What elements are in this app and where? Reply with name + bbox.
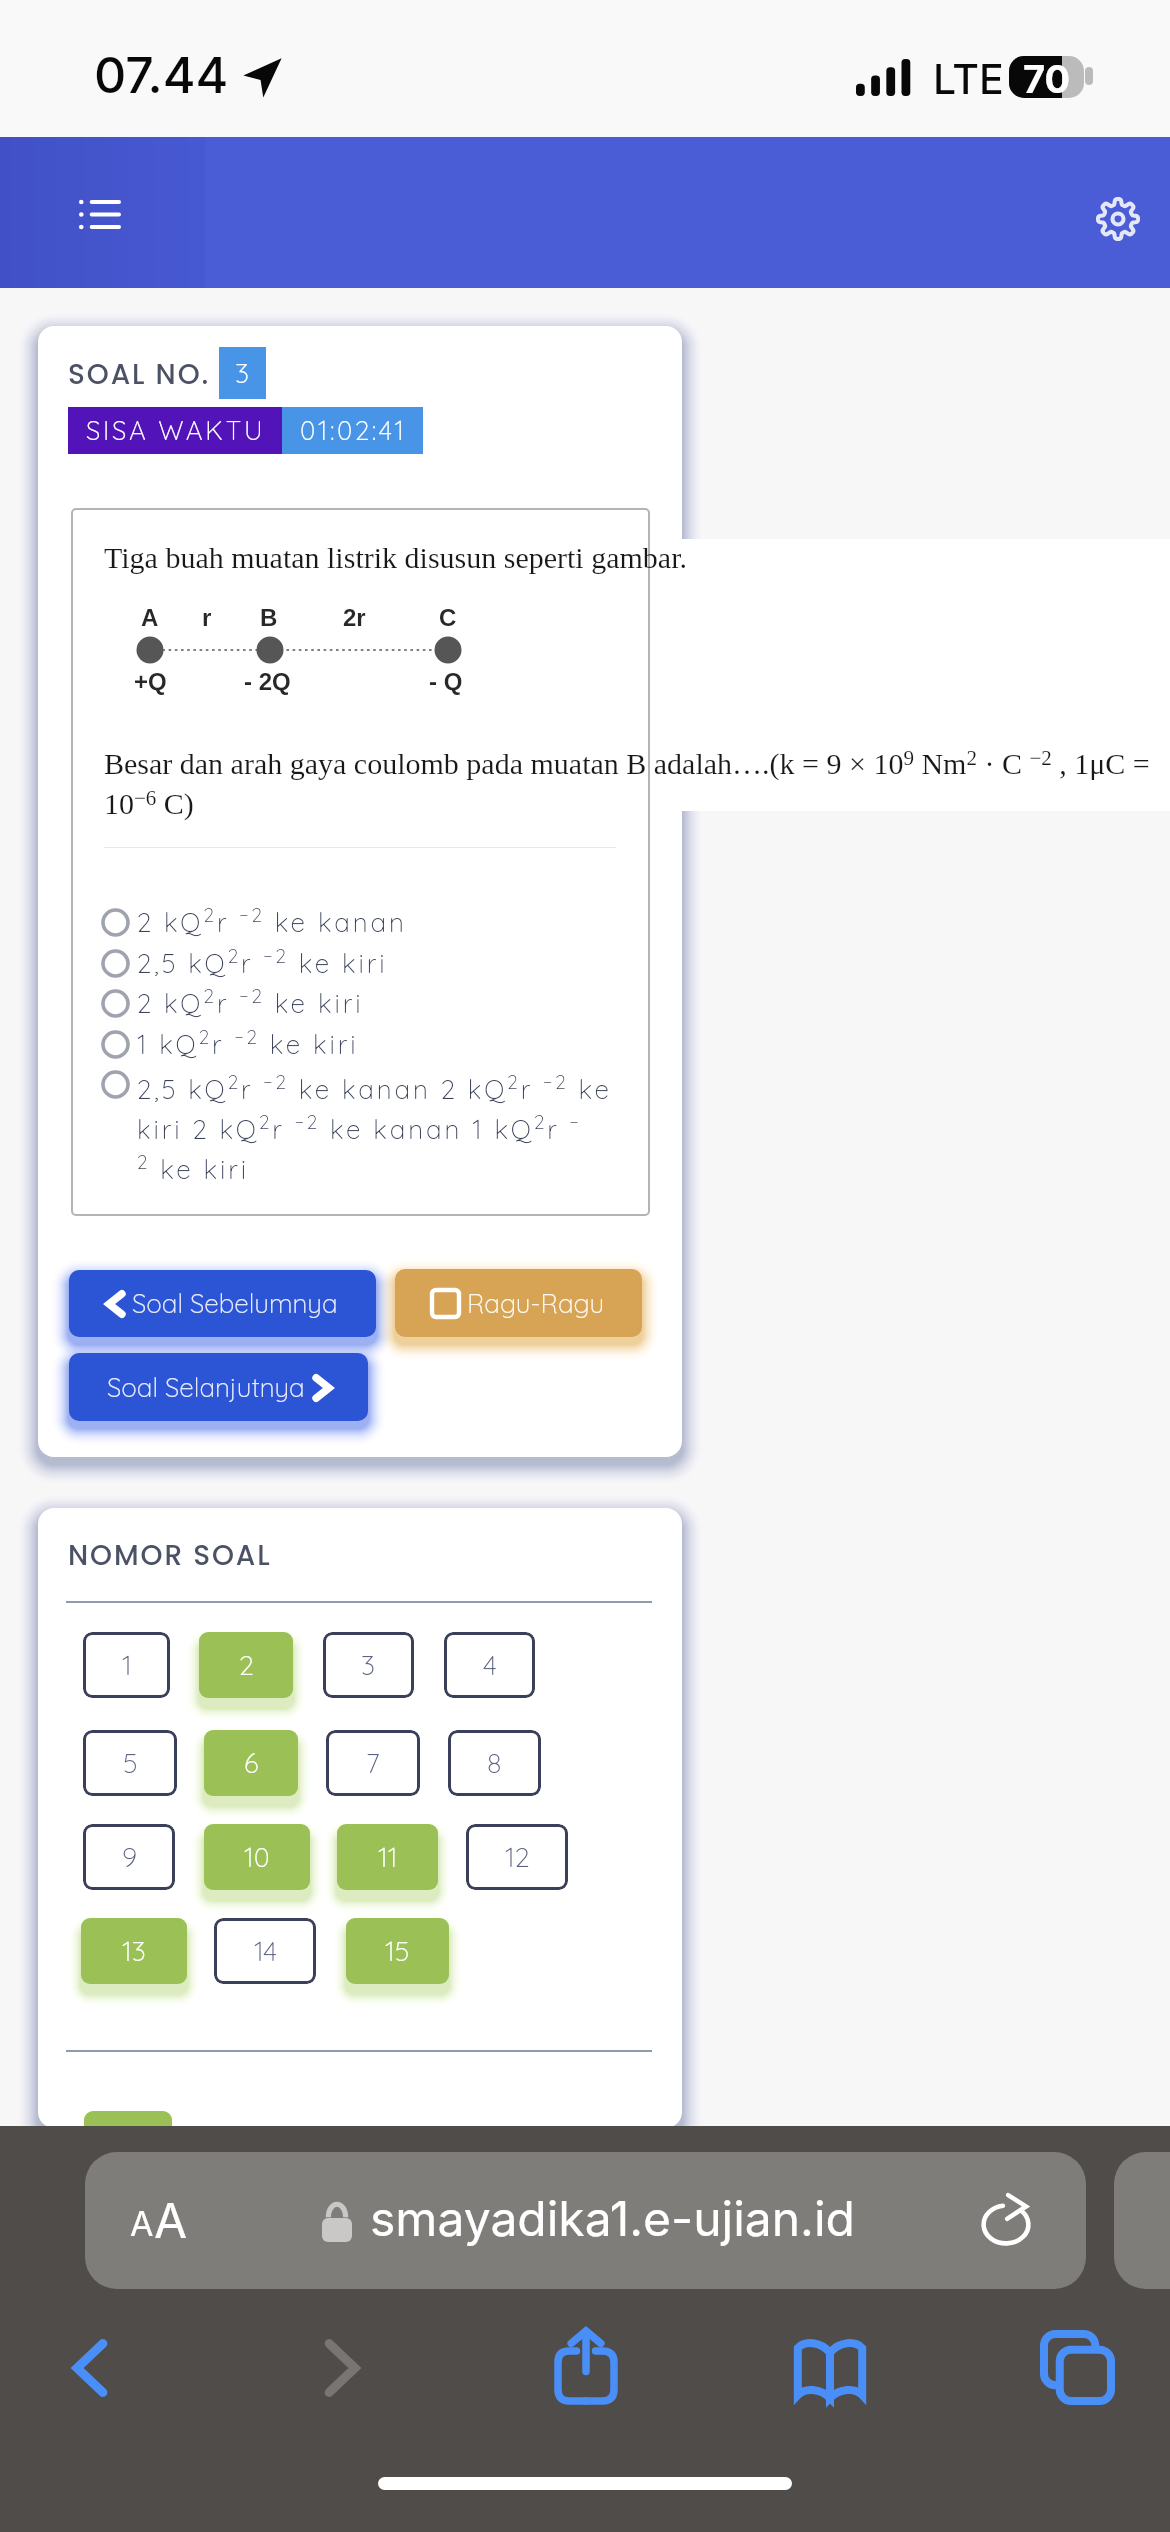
staticText: 07.44 — [94, 45, 229, 105]
button[interactable] — [84, 2111, 172, 2177]
staticText: +Q — [134, 668, 167, 695]
staticText: 11 — [378, 1840, 398, 1874]
staticText: kiri 2 kQ2r −2 ke kanan 1 kQ2r − — [137, 1110, 582, 1145]
staticText: 14 — [254, 1934, 277, 1968]
staticText: SOAL NO. — [68, 355, 211, 394]
staticText: 2,5 kQ2r −2 ke kiri — [137, 944, 388, 979]
button[interactable]: Forward — [300, 2326, 384, 2410]
button[interactable]: 5 — [83, 1730, 177, 1796]
staticText: 2,5 kQ2r −2 ke kanan 2 kQ2r −2 ke — [137, 1070, 612, 1105]
staticText: Ragu-Ragu — [467, 1287, 605, 1320]
staticText: 4 — [483, 1648, 497, 1682]
button[interactable]: 4 — [444, 1632, 535, 1698]
button[interactable]: 14 — [214, 1918, 316, 1984]
staticText: 2 ke kiri — [137, 1150, 249, 1185]
staticText: 9 — [122, 1840, 137, 1874]
button[interactable]: 12 — [466, 1824, 568, 1890]
button[interactable]: 2 — [199, 1632, 293, 1698]
staticText: 15 — [385, 1934, 410, 1968]
staticText: - Q — [429, 668, 463, 695]
button[interactable]: 2 kQ2r −2 ke kanan — [101, 902, 621, 943]
staticText: LTE — [933, 54, 1004, 104]
button[interactable]: Back — [48, 2326, 132, 2410]
staticText: A — [130, 2203, 154, 2244]
button[interactable]: Soal Selanjutnya — [69, 1353, 368, 1421]
button[interactable]: 2,5 kQ2r −2 ke kiri — [101, 943, 621, 984]
staticText: 3 — [361, 1648, 376, 1682]
staticText: 10−6 C) — [104, 786, 194, 821]
staticText: NOMOR SOAL — [68, 1536, 272, 1575]
staticText: smayadika1.e-ujian.id — [370, 2189, 855, 2247]
staticText: 1 — [122, 1648, 132, 1682]
button[interactable]: 3 — [323, 1632, 414, 1698]
button[interactable]: 7 — [326, 1730, 420, 1796]
button[interactable]: 8 — [448, 1730, 541, 1796]
button[interactable]: 9 — [83, 1824, 175, 1890]
button[interactable]: 1 kQ2r −2 ke kiri — [101, 1024, 621, 1065]
staticText: 2 kQ2r −2 ke kanan — [137, 903, 407, 938]
staticText: A — [141, 604, 159, 631]
button[interactable]: Share — [543, 2322, 629, 2408]
staticText: Tiga buah muatan listrik disusun seperti… — [104, 541, 687, 574]
button[interactable]: 6 — [204, 1730, 298, 1796]
button[interactable]: Soal Sebelumnya — [69, 1270, 376, 1337]
button[interactable]: Reload — [970, 2185, 1042, 2257]
button[interactable]: 15 — [346, 1918, 449, 1984]
staticText: SISA WAKTU — [86, 414, 266, 447]
staticText: Soal Selanjutnya — [107, 1371, 305, 1404]
staticText: 1 kQ2r −2 ke kiri — [137, 1025, 359, 1060]
button[interactable]: 2,5 kQ2r −2 ke kanan 2 kQ2r −2 ke — [101, 1064, 631, 1194]
button[interactable]: Settings — [1094, 195, 1142, 243]
button[interactable]: Bookmarks — [787, 2326, 873, 2412]
staticText: A — [154, 2191, 188, 2249]
button[interactable]: Menu — [52, 179, 148, 251]
staticText: 2 — [239, 1648, 254, 1682]
staticText: 2 kQ2r −2 ke kiri — [137, 984, 364, 1019]
button[interactable]: 11 — [337, 1824, 438, 1890]
staticText: 5 — [123, 1746, 138, 1780]
staticText: 13 — [122, 1934, 146, 1968]
staticText: 6 — [244, 1746, 259, 1780]
button[interactable]: 1 — [83, 1632, 170, 1698]
button[interactable]: Tabs — [1034, 2324, 1120, 2410]
button[interactable]: 10 — [204, 1824, 310, 1890]
staticText: 10 — [244, 1840, 270, 1874]
staticText: 12 — [505, 1840, 530, 1874]
button[interactable]: Ragu-Ragu — [395, 1269, 642, 1337]
staticText: Soal Sebelumnya — [132, 1287, 338, 1320]
button[interactable]: 2 kQ2r −2 ke kiri — [101, 983, 621, 1024]
staticText: - 2Q — [244, 668, 291, 695]
button[interactable]: 13 — [81, 1918, 187, 1984]
staticText: Besar dan arah gaya coulomb pada muatan … — [104, 746, 1150, 781]
staticText: B — [260, 604, 278, 631]
staticText: C — [439, 604, 457, 631]
staticText: 3 — [235, 356, 250, 390]
staticText: 70 — [1023, 56, 1071, 98]
staticText: 8 — [487, 1746, 502, 1780]
staticText: r — [202, 604, 212, 631]
staticText: 01:02:41 — [300, 414, 407, 447]
staticText: 7 — [366, 1746, 380, 1780]
staticText: 2r — [343, 604, 366, 631]
button[interactable]: A — [85, 2152, 1086, 2289]
